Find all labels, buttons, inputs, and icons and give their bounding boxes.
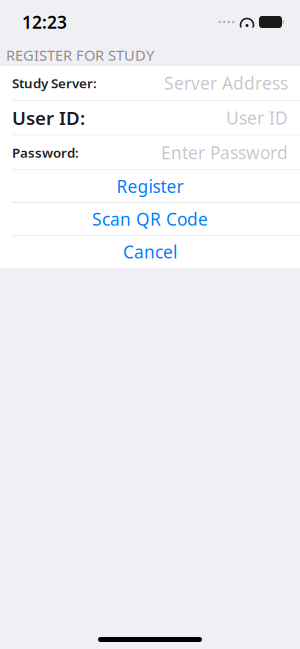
- staticText: Server Address: [164, 71, 288, 94]
- button[interactable]: User ID:: [0, 101, 300, 135]
- staticText: User ID:: [12, 105, 85, 130]
- staticText: Scan QR Code: [92, 207, 208, 230]
- button[interactable]: Cancel: [0, 236, 300, 268]
- button[interactable]: Scan QR Code: [0, 203, 300, 235]
- button[interactable]: Study Server:: [0, 66, 300, 100]
- staticText: REGISTER FOR STUDY: [6, 45, 154, 65]
- staticText: Register: [116, 175, 183, 198]
- staticText: 12:23: [22, 10, 67, 33]
- staticText: Password:: [12, 144, 79, 161]
- staticText: User ID: [226, 106, 288, 129]
- button[interactable]: Register: [0, 170, 300, 202]
- staticText: Enter Password: [161, 141, 288, 164]
- staticText: Study Server:: [12, 74, 97, 92]
- staticText: Cancel: [123, 240, 177, 263]
- button[interactable]: Password:: [0, 135, 300, 169]
